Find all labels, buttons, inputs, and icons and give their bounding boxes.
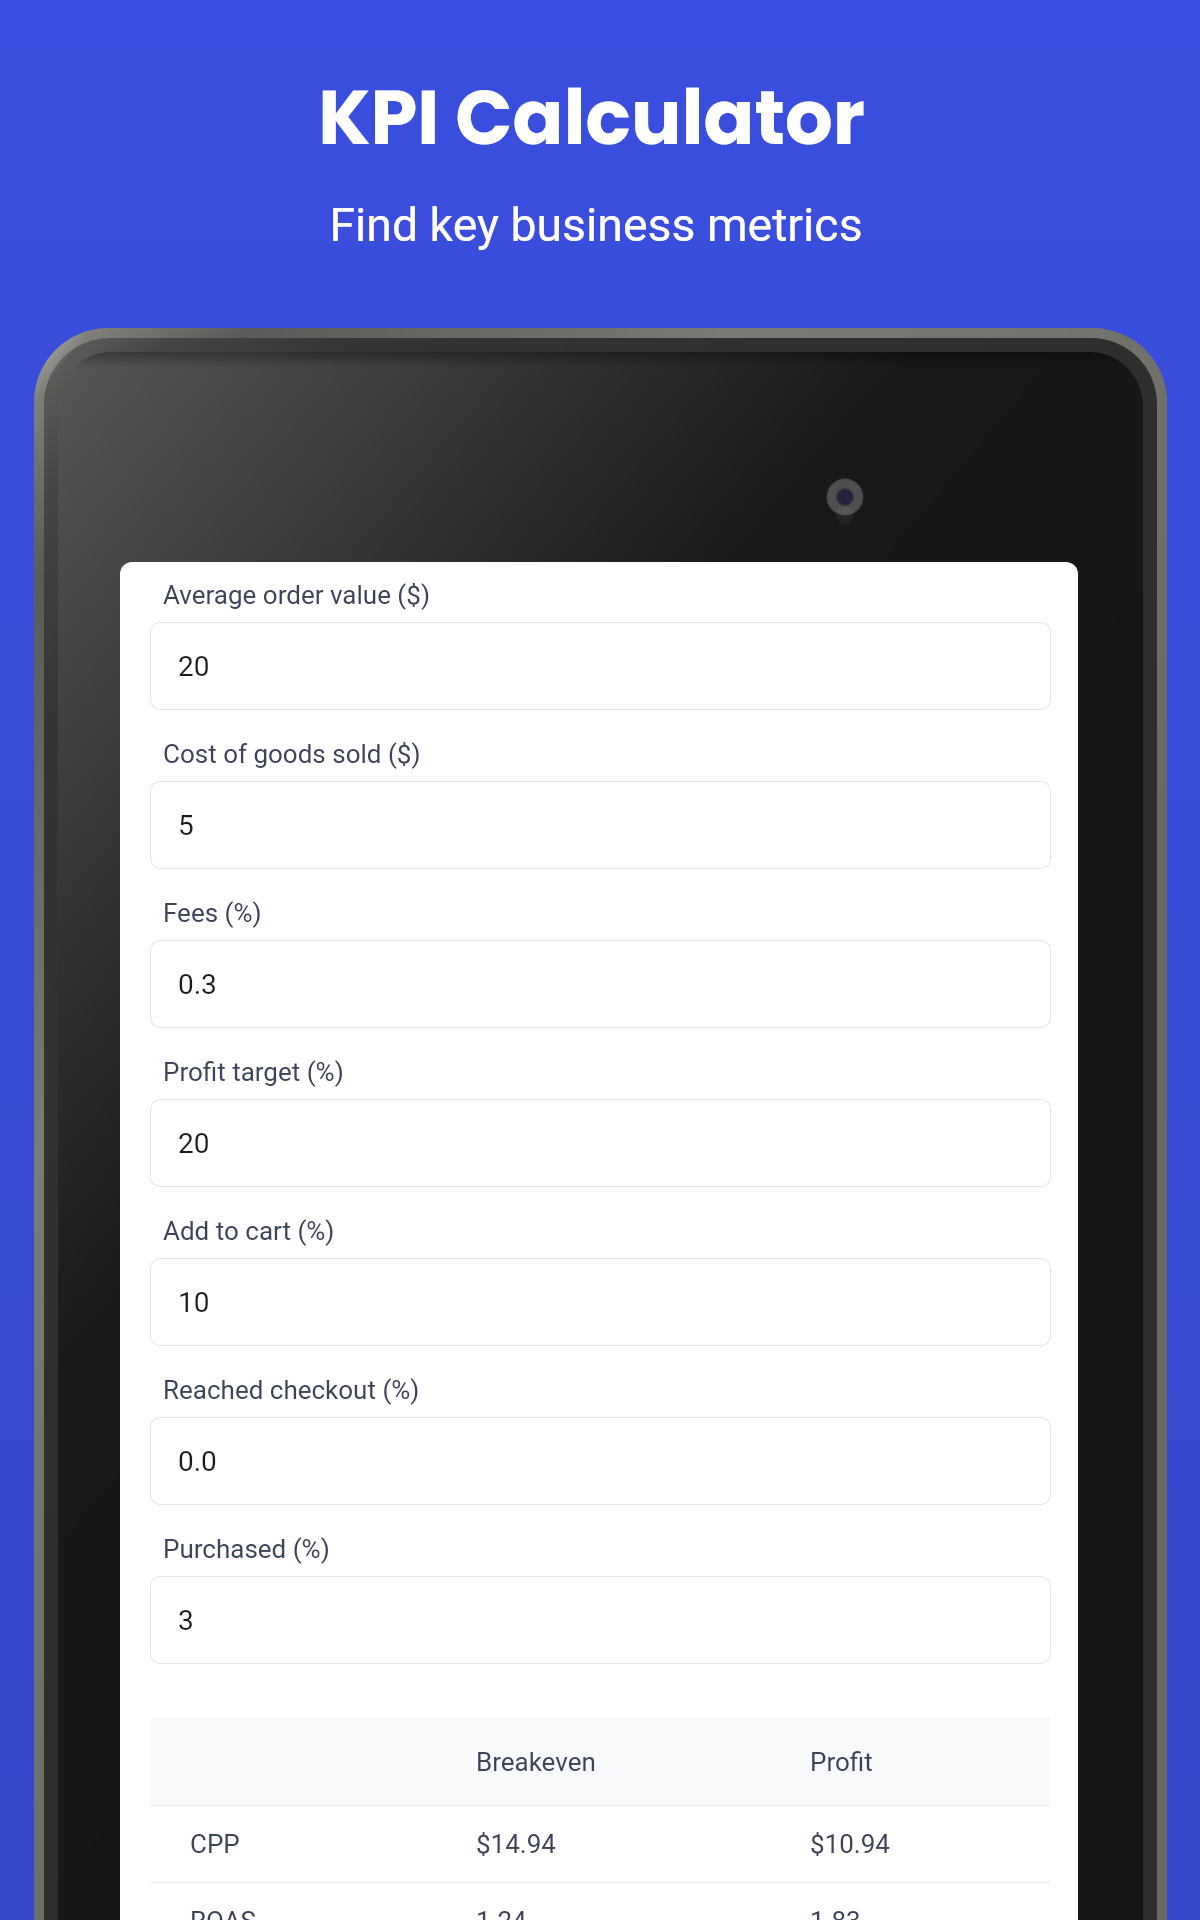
staticText: 20	[178, 1127, 210, 1160]
staticText: Profit	[810, 1747, 873, 1777]
staticText: ROAS	[190, 1906, 257, 1920]
staticText: $10.94	[810, 1829, 890, 1859]
button[interactable]: 20	[150, 1099, 1051, 1187]
staticText: 5	[178, 809, 194, 842]
staticText: Average order value ($)	[163, 580, 430, 610]
staticText: 3	[178, 1604, 194, 1637]
staticText: Fees (%)	[163, 898, 262, 928]
staticText: 10	[178, 1286, 210, 1319]
button[interactable]: 10	[150, 1258, 1051, 1346]
staticText: Cost of goods sold ($)	[163, 739, 421, 769]
button[interactable]: CPP	[151, 1806, 1050, 1882]
staticText: Reached checkout (%)	[163, 1375, 420, 1405]
staticText: Profit target (%)	[163, 1057, 344, 1087]
staticText: KPI Calculator	[318, 65, 865, 170]
staticText: Purchased (%)	[163, 1534, 330, 1564]
staticText: CPP	[190, 1829, 240, 1859]
button[interactable]: ROAS	[151, 1883, 1050, 1920]
staticText: $14.94	[476, 1829, 556, 1859]
staticText: Find key business metrics	[329, 198, 863, 252]
staticText: Breakeven	[476, 1747, 596, 1777]
staticText: 0.3	[178, 968, 217, 1001]
button[interactable]: 20	[150, 622, 1051, 710]
button[interactable]: 0.0	[150, 1417, 1051, 1505]
button[interactable]: 5	[150, 781, 1051, 869]
button[interactable]: 3	[150, 1576, 1051, 1664]
staticText: 0.0	[178, 1445, 217, 1478]
staticText: Add to cart (%)	[163, 1216, 335, 1246]
staticText: 1.83	[810, 1906, 861, 1920]
staticText: 20	[178, 650, 210, 683]
staticText: 1.24	[476, 1906, 527, 1920]
button[interactable]: 0.3	[150, 940, 1051, 1028]
